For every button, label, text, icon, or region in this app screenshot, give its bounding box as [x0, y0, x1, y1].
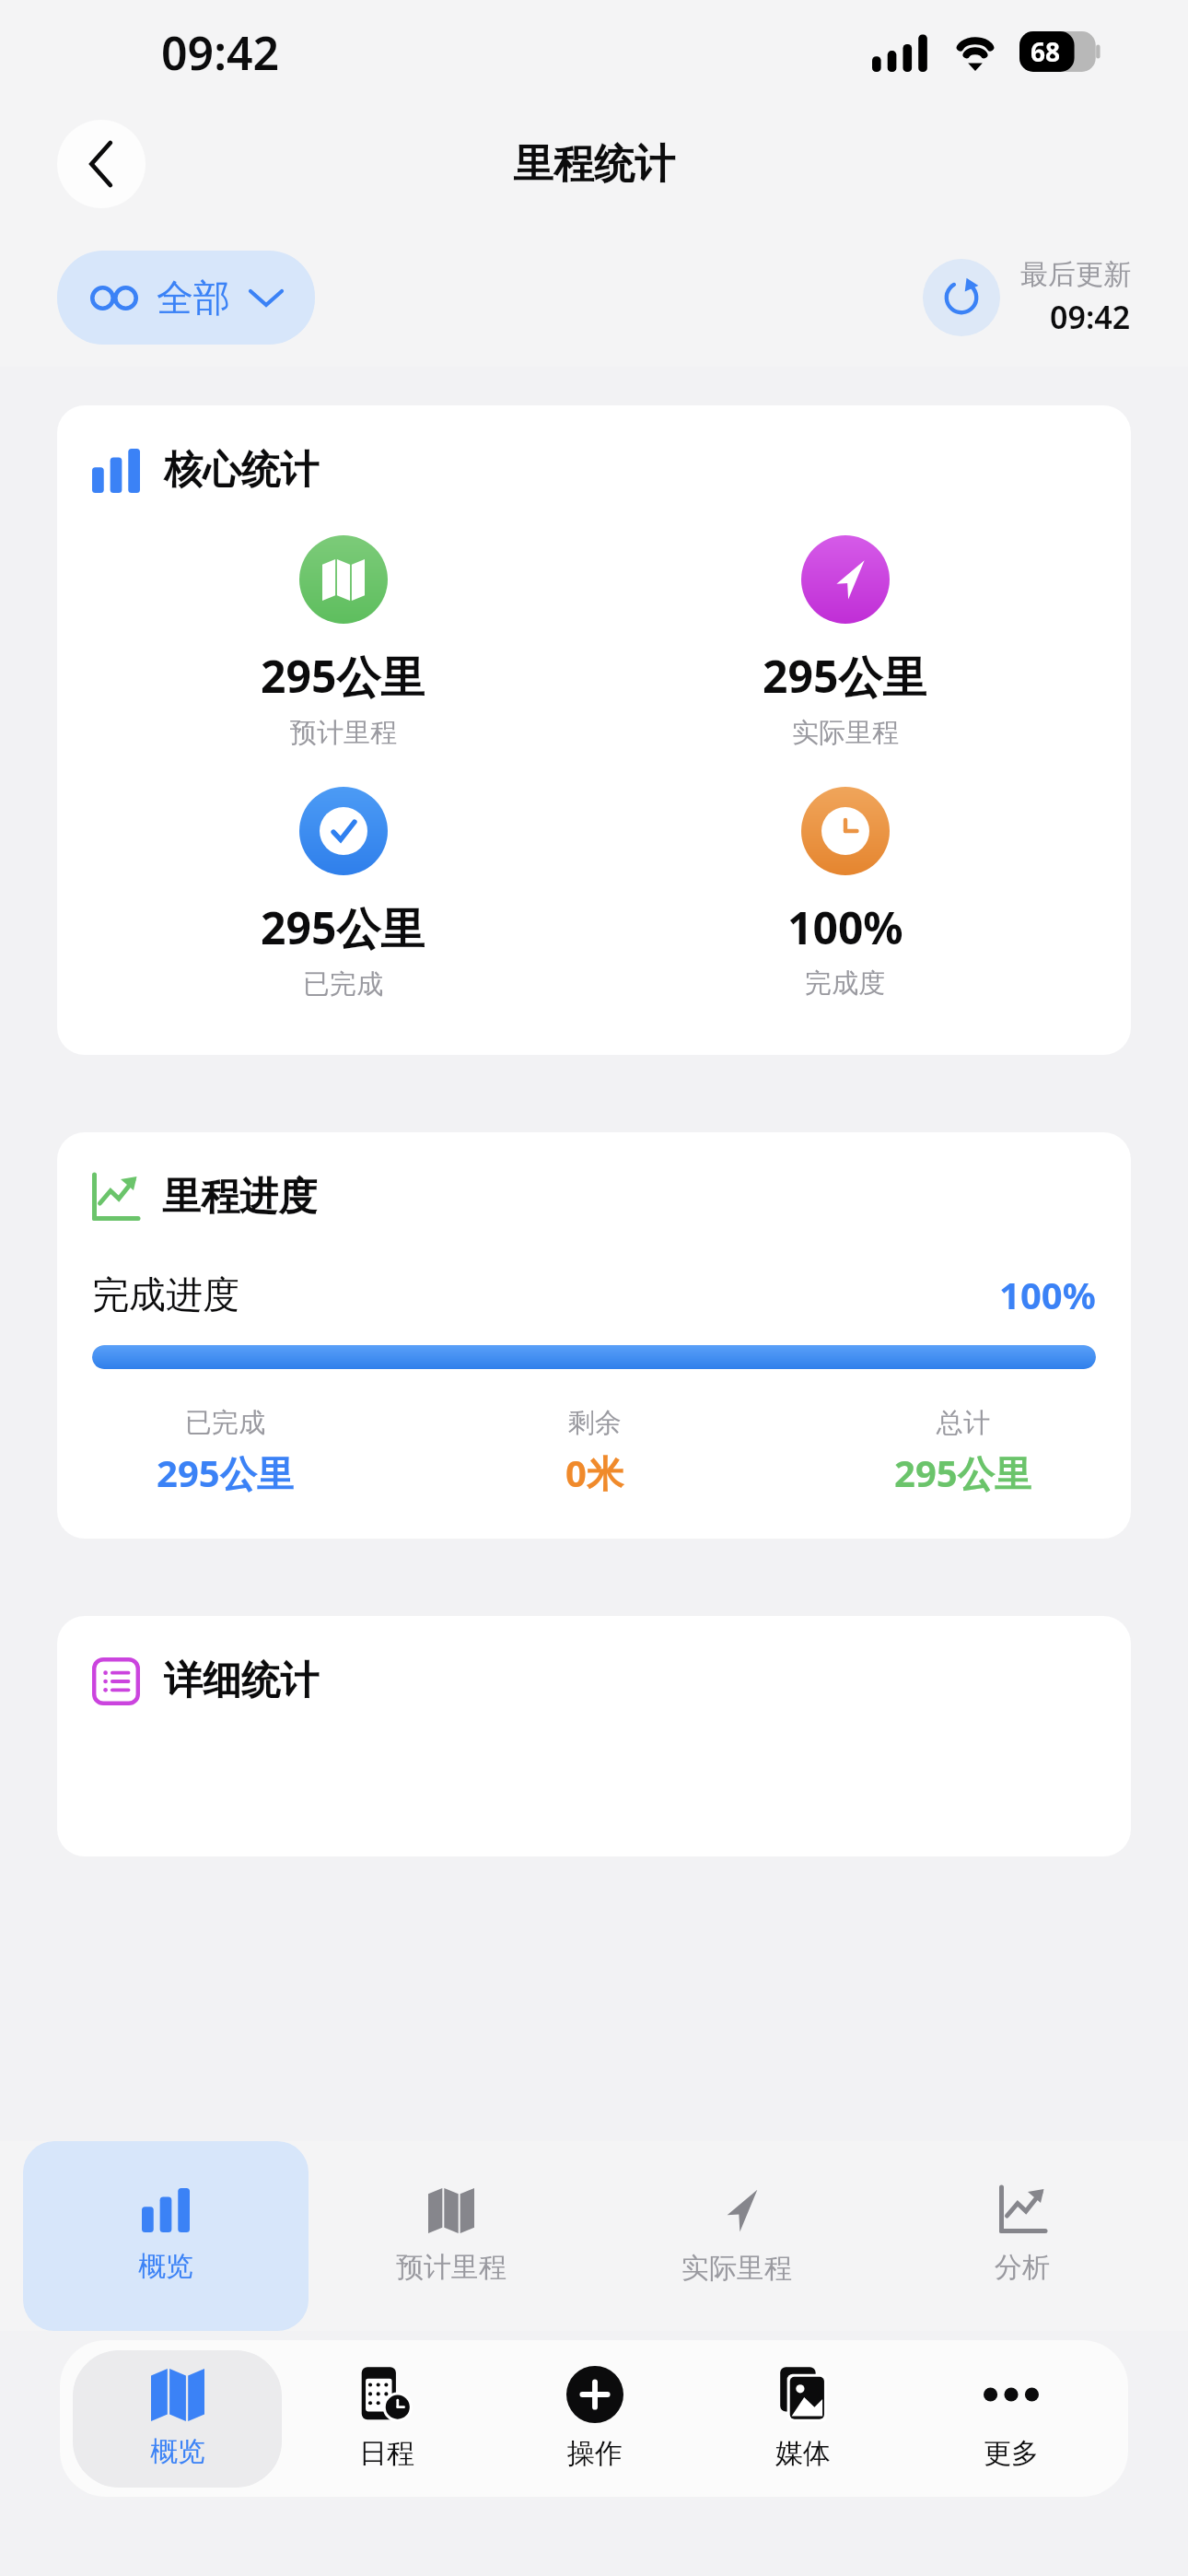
- staticText: 里程统计: [513, 139, 675, 190]
- button[interactable]: 刷新: [923, 259, 1000, 336]
- staticText: 日程: [359, 2436, 414, 2471]
- staticText: 实际里程: [681, 2251, 792, 2286]
- staticText: 详细统计: [164, 1657, 319, 1705]
- button[interactable]: 媒体: [699, 2348, 907, 2489]
- staticText: 已完成: [185, 1406, 265, 1440]
- button[interactable]: 概览: [23, 2141, 309, 2331]
- staticText: 更多: [984, 2436, 1039, 2471]
- staticText: 09:42: [161, 21, 280, 84]
- staticText: 预计里程: [290, 716, 397, 750]
- button[interactable]: 返回: [57, 120, 146, 208]
- staticText: 0米: [565, 1447, 623, 1498]
- staticText: 最后更新: [1020, 257, 1131, 292]
- button[interactable]: 日程: [282, 2348, 491, 2489]
- staticText: 操作: [567, 2436, 623, 2471]
- staticText: 概览: [150, 2434, 205, 2469]
- staticText: 核心统计: [164, 446, 319, 495]
- staticText: 里程进度: [162, 1173, 317, 1222]
- staticText: 295公里: [261, 646, 425, 707]
- button[interactable]: 预计里程: [309, 2141, 594, 2331]
- staticText: 已完成: [303, 967, 383, 1001]
- staticText: 295公里: [894, 1447, 1031, 1498]
- staticText: 分析: [995, 2250, 1050, 2285]
- staticText: 完成进度: [92, 1271, 239, 1317]
- button[interactable]: 实际里程: [594, 2141, 879, 2331]
- staticText: 68: [1031, 34, 1061, 69]
- button[interactable]: 操作: [491, 2348, 699, 2489]
- staticText: 100%: [787, 897, 903, 957]
- staticText: 概览: [138, 2249, 193, 2284]
- staticText: 295公里: [763, 646, 927, 707]
- staticText: 295公里: [157, 1447, 294, 1498]
- button[interactable]: 全部: [57, 251, 315, 345]
- staticText: 预计里程: [396, 2250, 507, 2285]
- staticText: 完成度: [805, 966, 885, 1001]
- staticText: 全部: [157, 275, 230, 321]
- button[interactable]: 分析: [879, 2141, 1165, 2331]
- staticText: 媒体: [775, 2436, 831, 2471]
- button[interactable]: 更多: [907, 2348, 1115, 2489]
- staticText: 实际里程: [792, 716, 899, 750]
- staticText: 100%: [999, 1270, 1096, 1319]
- staticText: 09:42: [1050, 296, 1131, 338]
- button[interactable]: 概览: [73, 2350, 282, 2488]
- staticText: 剩余: [568, 1406, 622, 1440]
- staticText: 总计: [937, 1406, 990, 1440]
- staticText: 295公里: [261, 897, 425, 958]
